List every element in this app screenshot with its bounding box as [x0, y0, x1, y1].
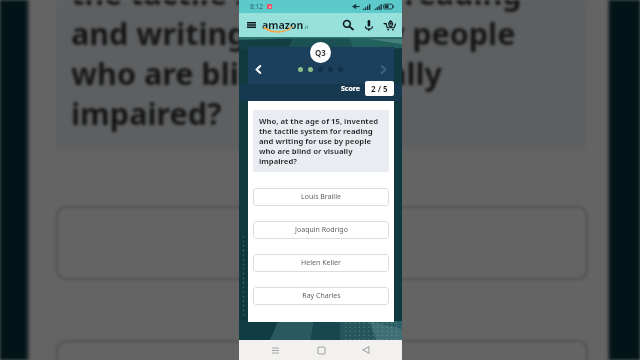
button[interactable]: Helen Keller — [253, 254, 389, 272]
staticText: who are blind or visually — [71, 52, 443, 92]
button[interactable]: Joaquin Rodrigo — [253, 221, 389, 239]
button[interactable]: Cart — [383, 18, 397, 32]
button[interactable]: Home — [311, 340, 331, 360]
button[interactable]: Previous question — [252, 63, 265, 76]
button[interactable]: Ray Charles — [253, 287, 389, 305]
staticText: Helen Keller — [301, 258, 341, 268]
staticText: Who, at the age of 15, invented the tact… — [259, 116, 383, 166]
staticText: the tactile system for reading — [71, 0, 522, 12]
button[interactable]: Next question — [377, 63, 390, 76]
staticText: Q3 — [315, 47, 326, 58]
button[interactable]: Recent apps — [265, 340, 285, 360]
button[interactable]: Back — [356, 340, 376, 360]
staticText: Score — [341, 84, 361, 94]
staticText: impaired? — [71, 92, 222, 132]
button[interactable]: Louis Braille — [253, 188, 389, 206]
button[interactable]: Menu — [244, 18, 258, 32]
staticText: Joaquin Rodrigo — [295, 225, 348, 235]
staticText: 2 / 5 — [371, 83, 388, 94]
staticText: 8:12 — [250, 2, 263, 11]
staticText: .in — [304, 24, 308, 31]
staticText: Louis Braille — [301, 192, 341, 202]
staticText: Ray Charles — [302, 291, 341, 301]
button[interactable]: Search — [341, 18, 355, 32]
staticText: and writing for use by people — [71, 12, 516, 52]
staticText: amazon — [262, 18, 304, 32]
button[interactable]: Voice search — [362, 18, 376, 32]
